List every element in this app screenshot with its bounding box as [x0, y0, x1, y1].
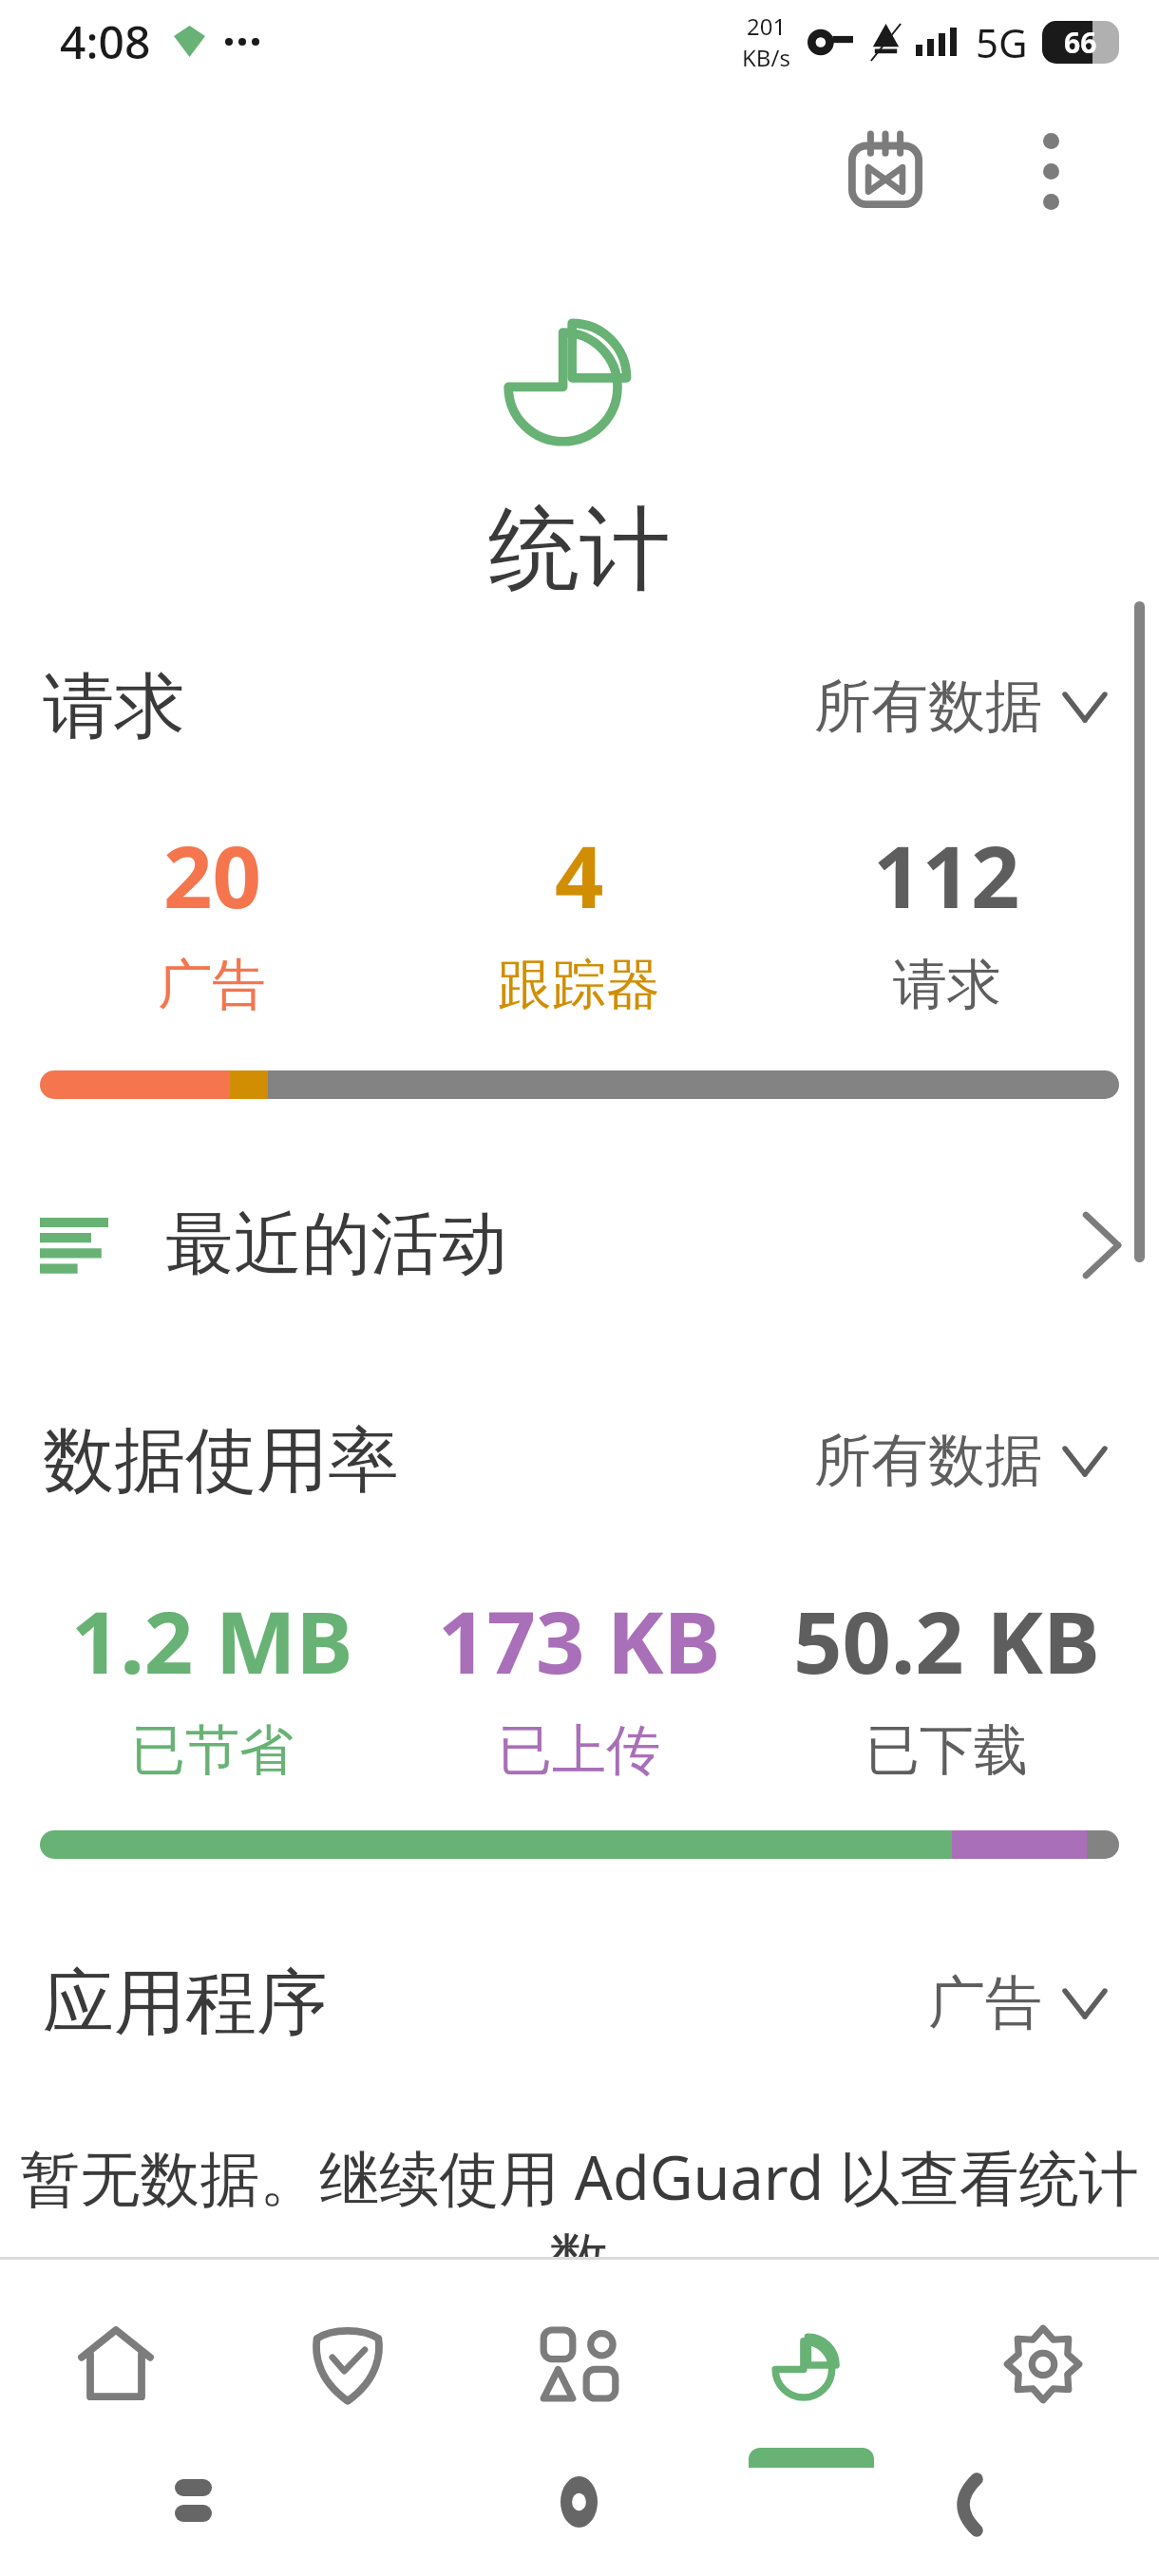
button[interactable]: 最近的活动	[0, 1179, 1159, 1311]
staticText: 所有数据	[814, 671, 1042, 743]
button[interactable]: Protection	[232, 2260, 464, 2468]
staticText: 5G	[976, 15, 1028, 69]
staticText: 173 KB	[438, 1582, 721, 1699]
staticText: 数据使用率	[43, 1416, 399, 1506]
staticText: 请求	[43, 662, 185, 751]
button[interactable]: 20	[28, 817, 395, 1019]
button[interactable]: 所有数据	[803, 659, 1116, 754]
button[interactable]: Apps	[464, 2260, 695, 2468]
staticText: 已下载	[865, 1716, 1028, 1785]
staticText: 所有数据	[814, 1425, 1042, 1497]
staticText: 50.2 KB	[793, 1582, 1100, 1699]
button[interactable]: More options	[982, 103, 1119, 239]
button[interactable]: 广告	[917, 1956, 1116, 2051]
staticText: 66	[1064, 23, 1097, 62]
button[interactable]: 所有数据	[803, 1413, 1116, 1508]
staticText: 最近的活动	[165, 1202, 507, 1288]
staticText: KB/s	[742, 42, 790, 73]
button[interactable]: Date range	[817, 103, 954, 239]
button[interactable]: Statistics	[695, 2260, 927, 2468]
staticText: 112	[873, 817, 1020, 934]
staticText: 应用程序	[43, 1959, 328, 2048]
staticText: 统计	[488, 493, 671, 608]
staticText: 暂无数据。继续使用 AdGuard 以查看统计数	[0, 2136, 1159, 2299]
staticText: 已节省	[131, 1716, 294, 1785]
staticText: 广告	[158, 951, 266, 1019]
button[interactable]: 50.2 KB	[763, 1582, 1130, 1785]
button[interactable]: Settings	[927, 2260, 1159, 2468]
staticText: 1.2 MB	[71, 1582, 353, 1699]
button[interactable]: Home	[386, 2468, 772, 2576]
staticText: 201	[747, 10, 787, 42]
button[interactable]: Home	[0, 2260, 232, 2468]
button[interactable]: 173 KB	[395, 1582, 763, 1785]
button[interactable]: Recents	[0, 2468, 386, 2576]
staticText: 4	[555, 817, 604, 934]
button[interactable]: 1.2 MB	[28, 1582, 395, 1785]
button[interactable]: 4	[395, 817, 763, 1019]
button[interactable]: Back	[772, 2468, 1159, 2576]
staticText: 广告	[928, 1967, 1042, 2039]
staticText: 跟踪器	[498, 951, 660, 1019]
staticText: 已上传	[498, 1716, 660, 1785]
staticText: 20	[163, 817, 261, 934]
button[interactable]: 112	[763, 817, 1130, 1019]
staticText: 4:08	[60, 10, 151, 72]
staticText: 请求	[893, 951, 1001, 1019]
